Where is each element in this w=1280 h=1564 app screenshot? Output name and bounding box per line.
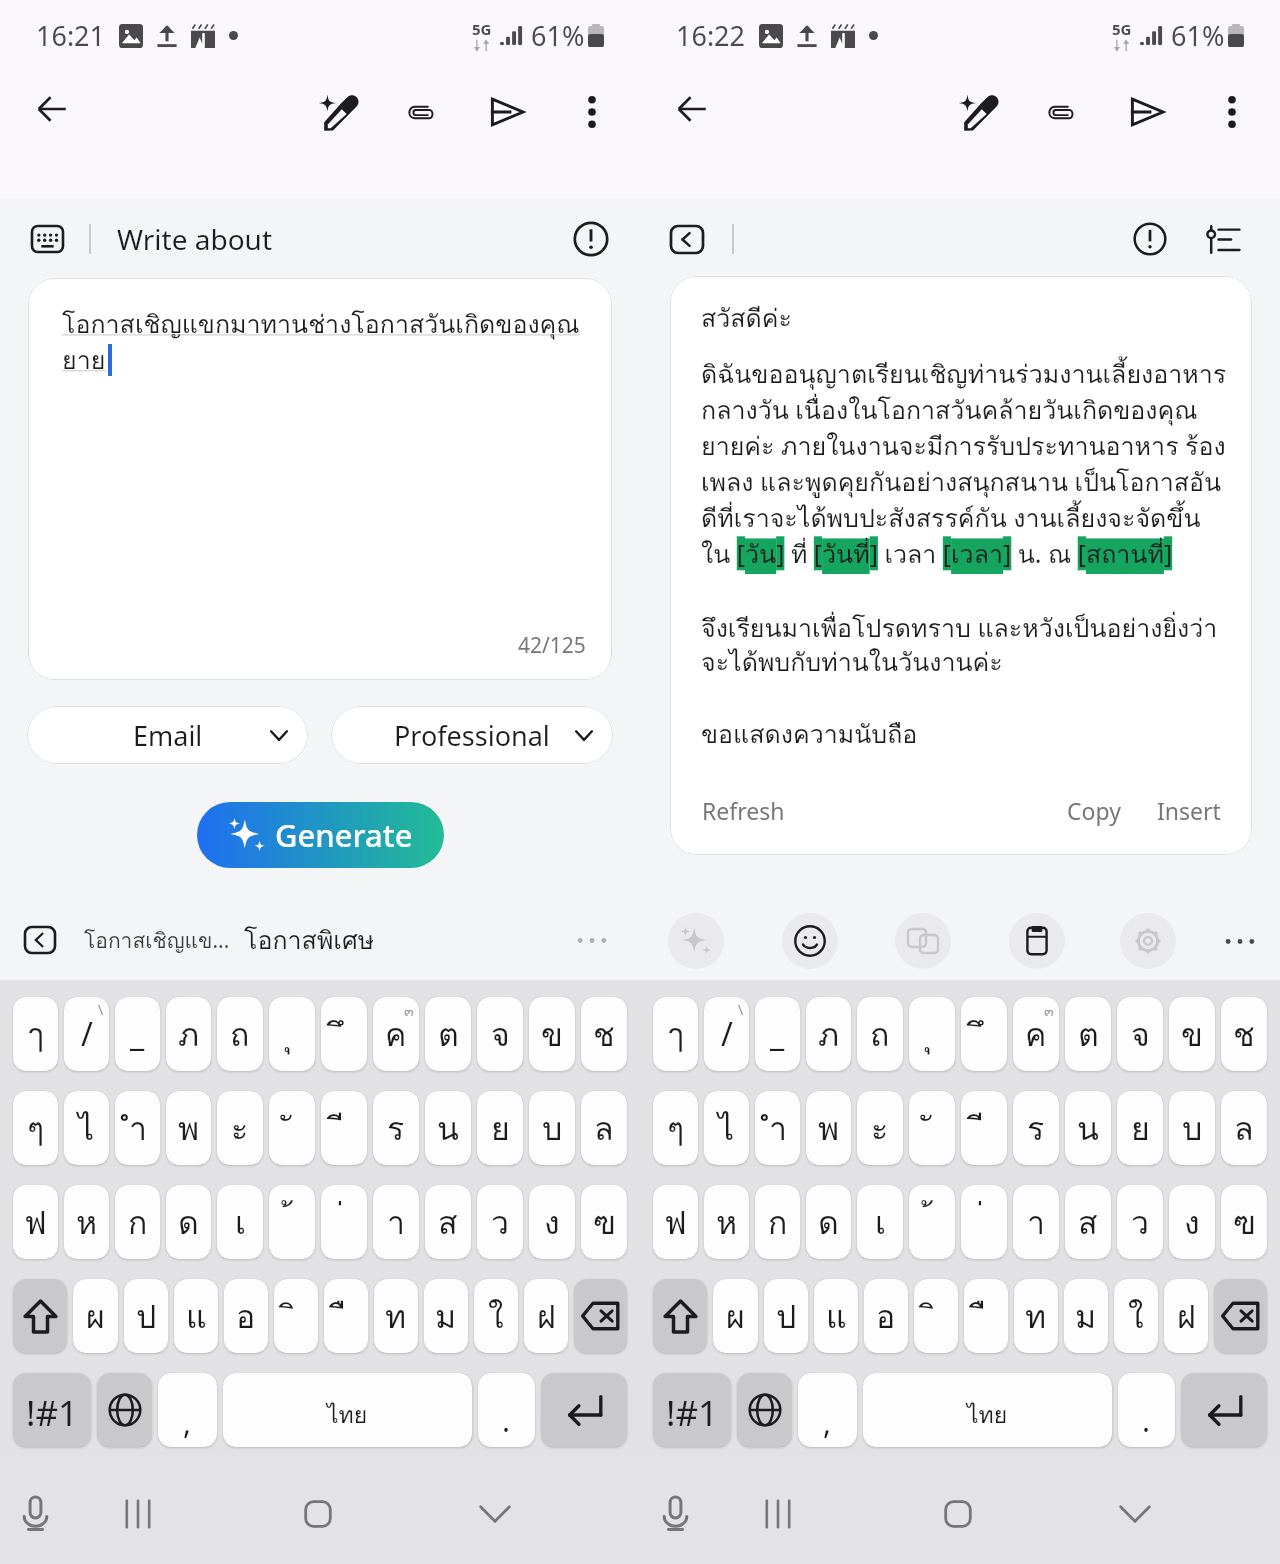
button[interactable]: บ [529, 1091, 575, 1165]
button[interactable]: ต [1065, 997, 1111, 1071]
button[interactable]: Recent apps [106, 1487, 170, 1541]
button[interactable]: ข [529, 997, 575, 1071]
button[interactable]: ้ [269, 1185, 315, 1259]
button[interactable]: จ [1117, 997, 1163, 1071]
button[interactable]: ก [115, 1185, 160, 1259]
button[interactable]: ฟ [13, 1185, 58, 1259]
button[interactable]: ฝ [524, 1279, 568, 1353]
button[interactable]: Translate [895, 913, 951, 969]
button[interactable]: Change language [737, 1373, 792, 1447]
button[interactable]: ึ [961, 997, 1007, 1071]
button[interactable]: Hide keyboard [1103, 1487, 1167, 1541]
button[interactable]: Enter [541, 1373, 627, 1447]
button[interactable]: ุ [909, 997, 955, 1071]
button[interactable]: Writing assist [947, 81, 1009, 143]
button[interactable]: , [158, 1373, 217, 1447]
button[interactable]: ำ [115, 1091, 160, 1165]
button[interactable]: Voice input [643, 1487, 707, 1541]
button[interactable]: More options [561, 81, 623, 143]
button[interactable]: ป [124, 1279, 168, 1353]
button[interactable]: ค [1013, 997, 1059, 1071]
button[interactable]: ะ [217, 1091, 263, 1165]
button[interactable]: พ [166, 1091, 211, 1165]
button[interactable]: ง [1169, 1185, 1215, 1259]
button[interactable]: ฃ [1221, 1185, 1267, 1259]
button[interactable]: ง [529, 1185, 575, 1259]
button[interactable]: ้ [909, 1185, 955, 1259]
button[interactable]: . [1118, 1373, 1175, 1447]
button[interactable]: ผ [713, 1279, 758, 1353]
button[interactable]: น [1065, 1091, 1111, 1165]
button[interactable]: / [704, 997, 749, 1071]
button[interactable]: ะ [857, 1091, 903, 1165]
button[interactable]: Professional [331, 706, 613, 764]
button[interactable]: ล [581, 1091, 627, 1165]
button[interactable]: Back [21, 81, 83, 143]
button[interactable]: Email [27, 706, 308, 764]
button[interactable]: ด [806, 1185, 851, 1259]
button[interactable]: ิ [914, 1279, 958, 1353]
button[interactable]: Adjust tone [1200, 215, 1248, 263]
button[interactable]: Generate [197, 802, 444, 868]
button[interactable]: ใ [1114, 1279, 1158, 1353]
button[interactable]: ไทย [863, 1373, 1112, 1447]
button[interactable]: Emoji [782, 913, 838, 969]
button[interactable]: ส [1065, 1185, 1111, 1259]
button[interactable]: ่ [961, 1185, 1007, 1259]
button[interactable]: ห [704, 1185, 749, 1259]
button[interactable]: เ [857, 1185, 903, 1259]
button[interactable]: Previous suggestion [16, 916, 64, 964]
button[interactable]: ต [425, 997, 471, 1071]
button[interactable]: ๅ [13, 997, 58, 1071]
button[interactable]: ร [1013, 1091, 1059, 1165]
button[interactable]: ๆ [653, 1091, 698, 1165]
button[interactable]: !#1 [13, 1373, 91, 1447]
button[interactable]: ค [373, 997, 419, 1071]
button[interactable]: ั [909, 1091, 955, 1165]
button[interactable]: ว [1117, 1185, 1163, 1259]
button[interactable]: ถ [217, 997, 263, 1071]
button[interactable]: Home [286, 1487, 350, 1541]
button[interactable]: Hide keyboard [463, 1487, 527, 1541]
button[interactable]: พ [806, 1091, 851, 1165]
button[interactable]: โอกาสเชิญแข... [84, 924, 230, 957]
button[interactable]: Attach file [1034, 81, 1096, 143]
button[interactable]: ึ [321, 997, 367, 1071]
button[interactable]: ร [373, 1091, 419, 1165]
button[interactable]: Collapse panel [664, 216, 710, 262]
button[interactable]: ม [1064, 1279, 1108, 1353]
button[interactable]: ่ [321, 1185, 367, 1259]
button[interactable]: ั [269, 1091, 315, 1165]
button[interactable]: ื [324, 1279, 368, 1353]
button[interactable]: Writing assist [307, 81, 369, 143]
button[interactable]: Shift [653, 1279, 707, 1353]
button[interactable]: , [798, 1373, 857, 1447]
button[interactable]: า [1013, 1185, 1059, 1259]
button[interactable]: Back [661, 81, 723, 143]
button[interactable]: Recent apps [746, 1487, 810, 1541]
button[interactable]: ี [961, 1091, 1007, 1165]
button[interactable]: _ [755, 997, 800, 1071]
button[interactable]: !#1 [653, 1373, 731, 1447]
button[interactable]: ย [1117, 1091, 1163, 1165]
button[interactable]: Shift [13, 1279, 67, 1353]
button[interactable]: อ [224, 1279, 268, 1353]
button[interactable]: ช [581, 997, 627, 1071]
button[interactable]: Backspace [1214, 1279, 1267, 1353]
button[interactable]: ก [755, 1185, 800, 1259]
button[interactable]: ี [321, 1091, 367, 1165]
button[interactable]: ป [764, 1279, 808, 1353]
button[interactable]: ไ [704, 1091, 749, 1165]
button[interactable]: ท [374, 1279, 418, 1353]
button[interactable]: Information [1126, 215, 1174, 263]
button[interactable]: โอกาสพิเศษ [244, 920, 375, 960]
button[interactable]: า [373, 1185, 419, 1259]
button[interactable]: Home [926, 1487, 990, 1541]
button[interactable]: ล [1221, 1091, 1267, 1165]
button[interactable]: แ [814, 1279, 858, 1353]
button[interactable]: ด [166, 1185, 211, 1259]
button[interactable]: ภ [166, 997, 211, 1071]
button[interactable]: ำ [755, 1091, 800, 1165]
button[interactable]: Copy [1061, 787, 1127, 834]
button[interactable]: จ [477, 997, 523, 1071]
